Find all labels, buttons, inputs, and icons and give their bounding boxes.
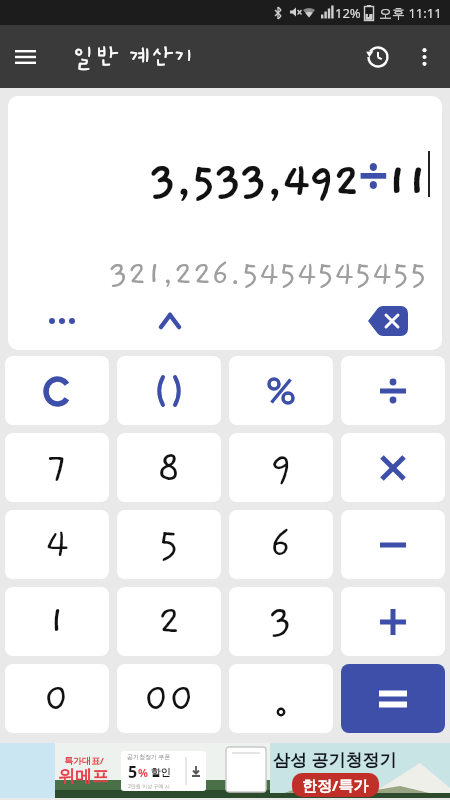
button[interactable]: [117, 356, 221, 425]
button[interactable]: [404, 37, 444, 77]
button[interactable]: 9: [229, 433, 333, 502]
button[interactable]: [116, 293, 224, 349]
staticText: 2만원 이상 구매 시: [128, 783, 170, 790]
staticText: 공기청정기 쿠폰: [127, 753, 171, 761]
staticText: 3: [269, 600, 293, 644]
button[interactable]: [341, 510, 445, 579]
staticText: 0: [44, 677, 70, 721]
staticText: 9: [270, 446, 293, 490]
staticText: 일반 계산기: [73, 43, 196, 70]
button[interactable]: 0: [5, 664, 109, 733]
button[interactable]: 5: [117, 510, 221, 579]
staticText: 8: [157, 446, 181, 490]
button[interactable]: 3: [229, 587, 333, 656]
staticText: 00: [144, 677, 195, 721]
staticText: 5: [128, 761, 138, 783]
button[interactable]: [333, 293, 442, 349]
staticText: 2: [158, 600, 181, 644]
staticText: 5: [158, 523, 180, 567]
staticText: 1: [48, 600, 66, 644]
staticText: %: [138, 765, 148, 780]
staticText: 할인: [148, 765, 171, 779]
button[interactable]: 2: [117, 587, 221, 656]
button[interactable]: 00: [117, 664, 221, 733]
staticText: 삼성 공기청정기: [273, 748, 397, 771]
button[interactable]: [8, 293, 116, 349]
button[interactable]: 6: [229, 510, 333, 579]
button[interactable]: 7: [5, 433, 109, 502]
button[interactable]: [229, 664, 333, 733]
button[interactable]: [341, 356, 445, 425]
staticText: 12%: [335, 4, 361, 22]
staticText: 3,533,492÷11: [149, 138, 427, 210]
button[interactable]: [5, 356, 109, 425]
staticText: 특가대표/: [64, 754, 104, 766]
button[interactable]: 1: [5, 587, 109, 656]
button[interactable]: 특가대표/: [0, 743, 450, 798]
button[interactable]: [341, 664, 445, 733]
staticText: 6: [270, 523, 292, 567]
button[interactable]: [341, 587, 445, 656]
staticText: 4: [45, 523, 70, 567]
staticText: 321,226.5454545455: [109, 257, 428, 293]
button[interactable]: [229, 356, 333, 425]
staticText: 오후 11:11: [379, 4, 442, 22]
staticText: 위메프: [58, 766, 109, 787]
staticText: 7: [47, 446, 68, 490]
button[interactable]: [5, 37, 45, 77]
button[interactable]: 8: [117, 433, 221, 502]
button[interactable]: 4: [5, 510, 109, 579]
button[interactable]: [341, 433, 445, 502]
staticText: 한정/특가: [302, 775, 369, 795]
button[interactable]: [358, 37, 398, 77]
